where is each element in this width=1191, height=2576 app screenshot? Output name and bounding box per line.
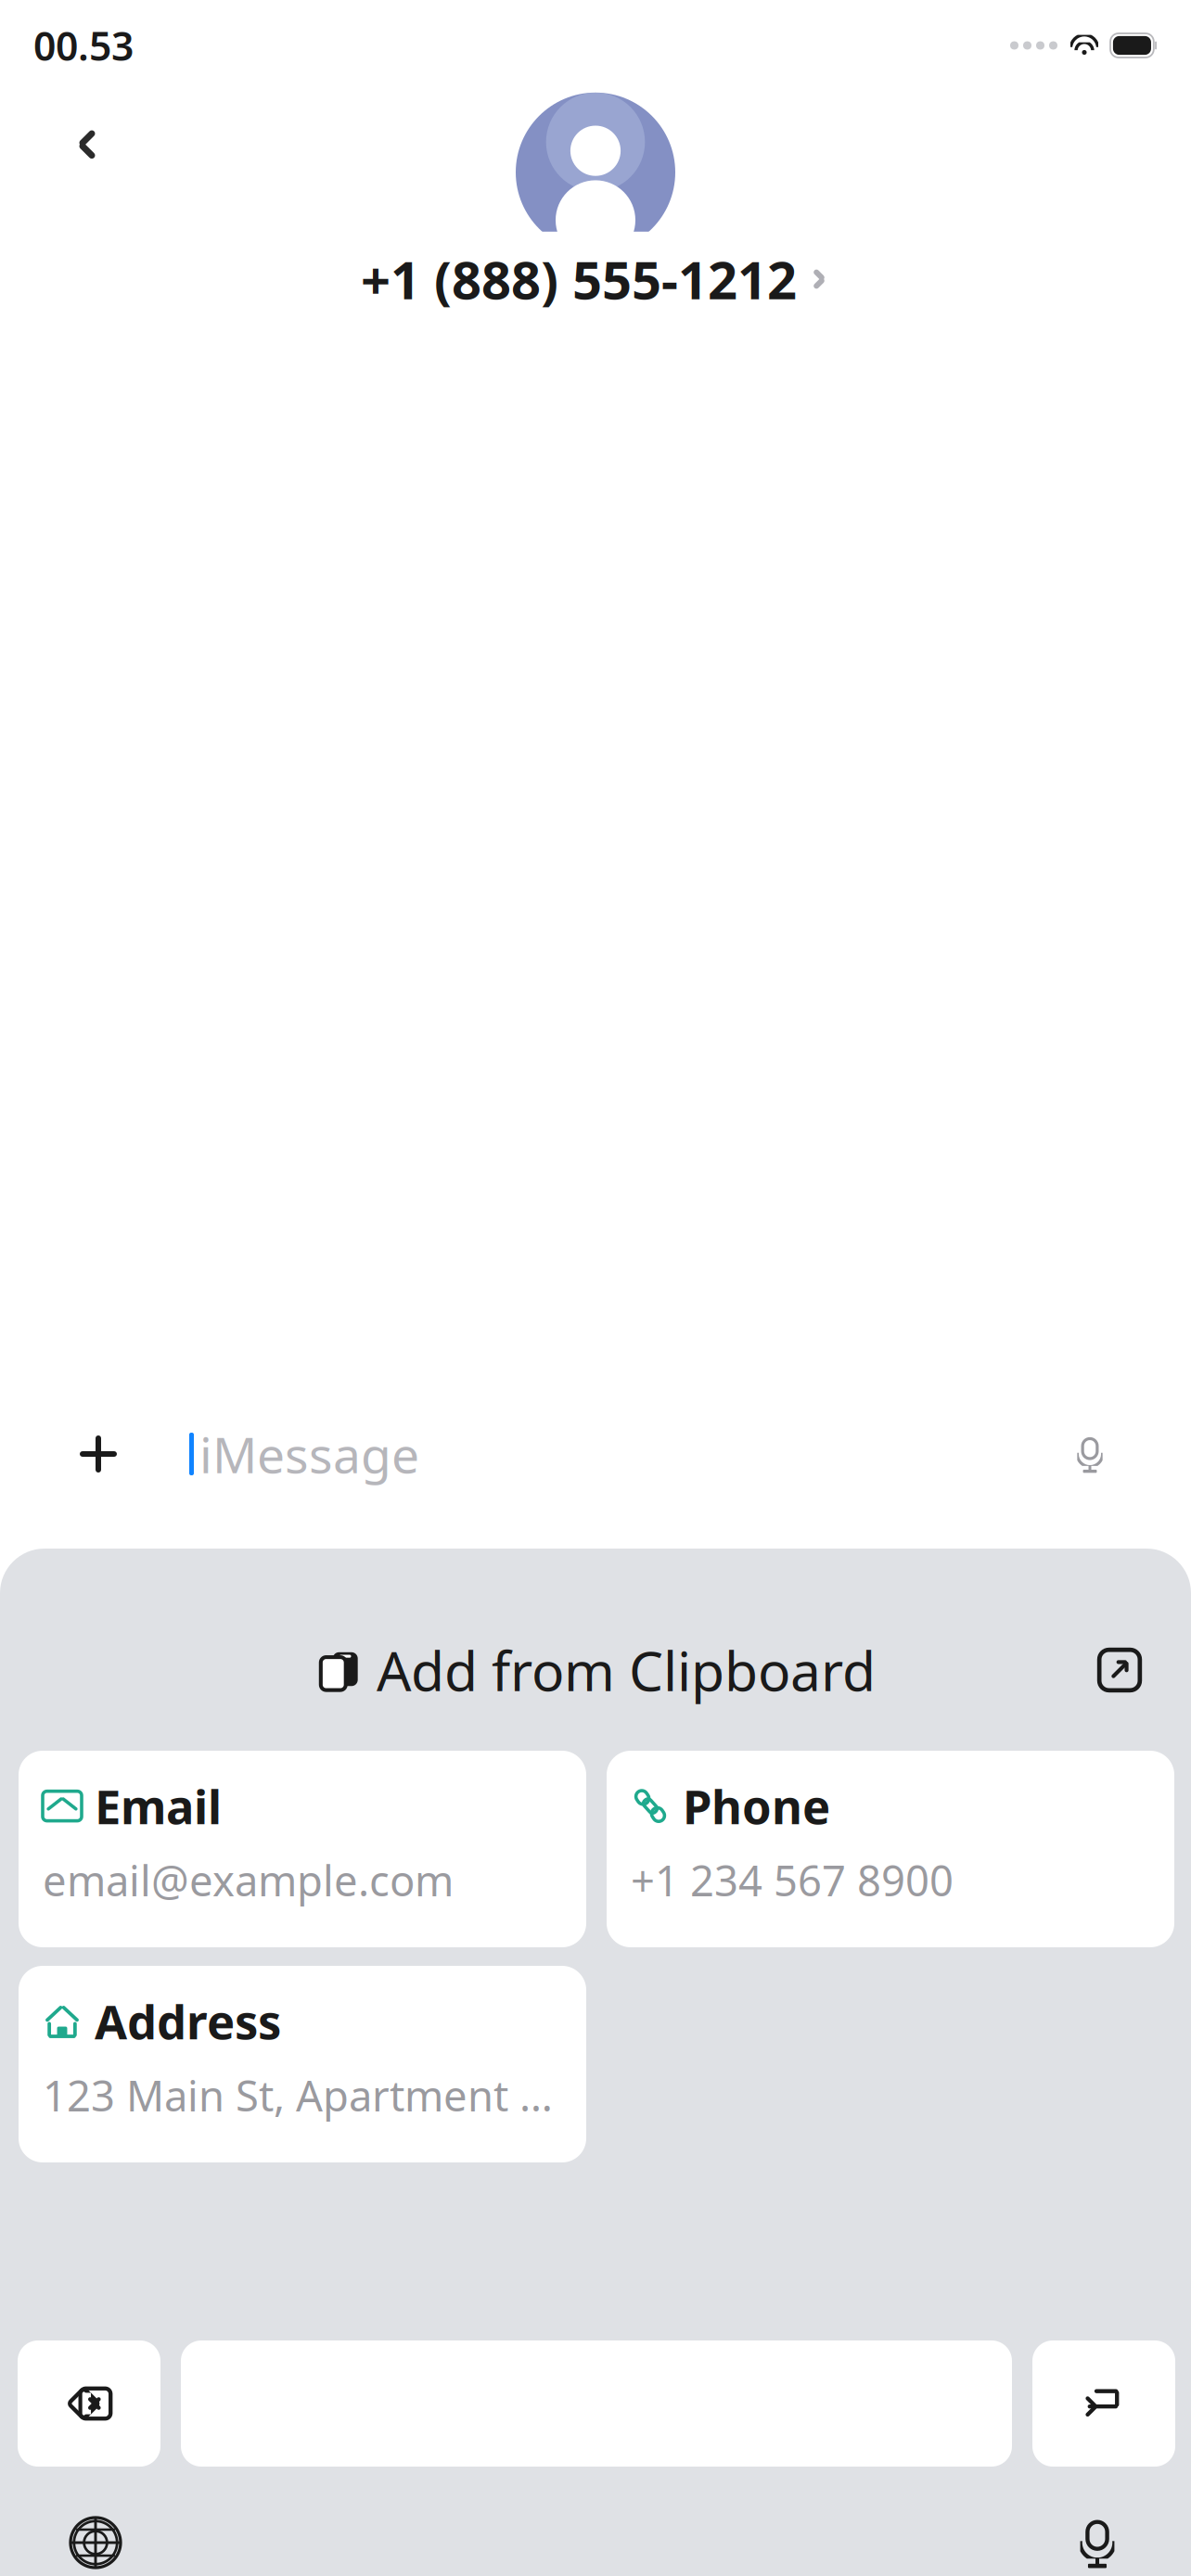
button[interactable]: Add attachment	[54, 1409, 143, 1498]
button[interactable]: Space	[181, 2340, 1012, 2467]
staticText: +1 (888) 555-1212	[361, 245, 797, 314]
staticText: Email	[95, 1775, 222, 1837]
staticText: 00.53	[33, 19, 134, 72]
button[interactable]: Delete	[18, 2340, 160, 2467]
button[interactable]: Return	[1032, 2340, 1175, 2467]
button[interactable]: Add from Clipboard	[306, 1626, 887, 1714]
button[interactable]: Address	[19, 1966, 586, 2162]
button[interactable]: Dictate	[1053, 2498, 1142, 2576]
button[interactable]: Expand clipboard	[1086, 1637, 1153, 1703]
button[interactable]: Switch keyboard	[51, 2498, 140, 2576]
staticText: Address	[95, 1990, 281, 2052]
staticText: Phone	[683, 1775, 830, 1837]
staticText: Add from Clipboard	[377, 1634, 876, 1706]
staticText: iMessage	[199, 1421, 419, 1487]
button[interactable]: Phone	[607, 1751, 1174, 1947]
staticText: +1 234 567 8900	[631, 1852, 954, 1908]
button[interactable]: +1 (888) 555-1212	[329, 232, 862, 327]
button[interactable]: iMessage	[163, 1409, 1137, 1498]
staticText: 123 Main St, Apartment 4A, Cit…	[43, 2067, 562, 2123]
button[interactable]: Email	[19, 1751, 586, 1947]
button[interactable]: Back	[50, 107, 124, 182]
staticText: email@example.com	[43, 1852, 454, 1908]
